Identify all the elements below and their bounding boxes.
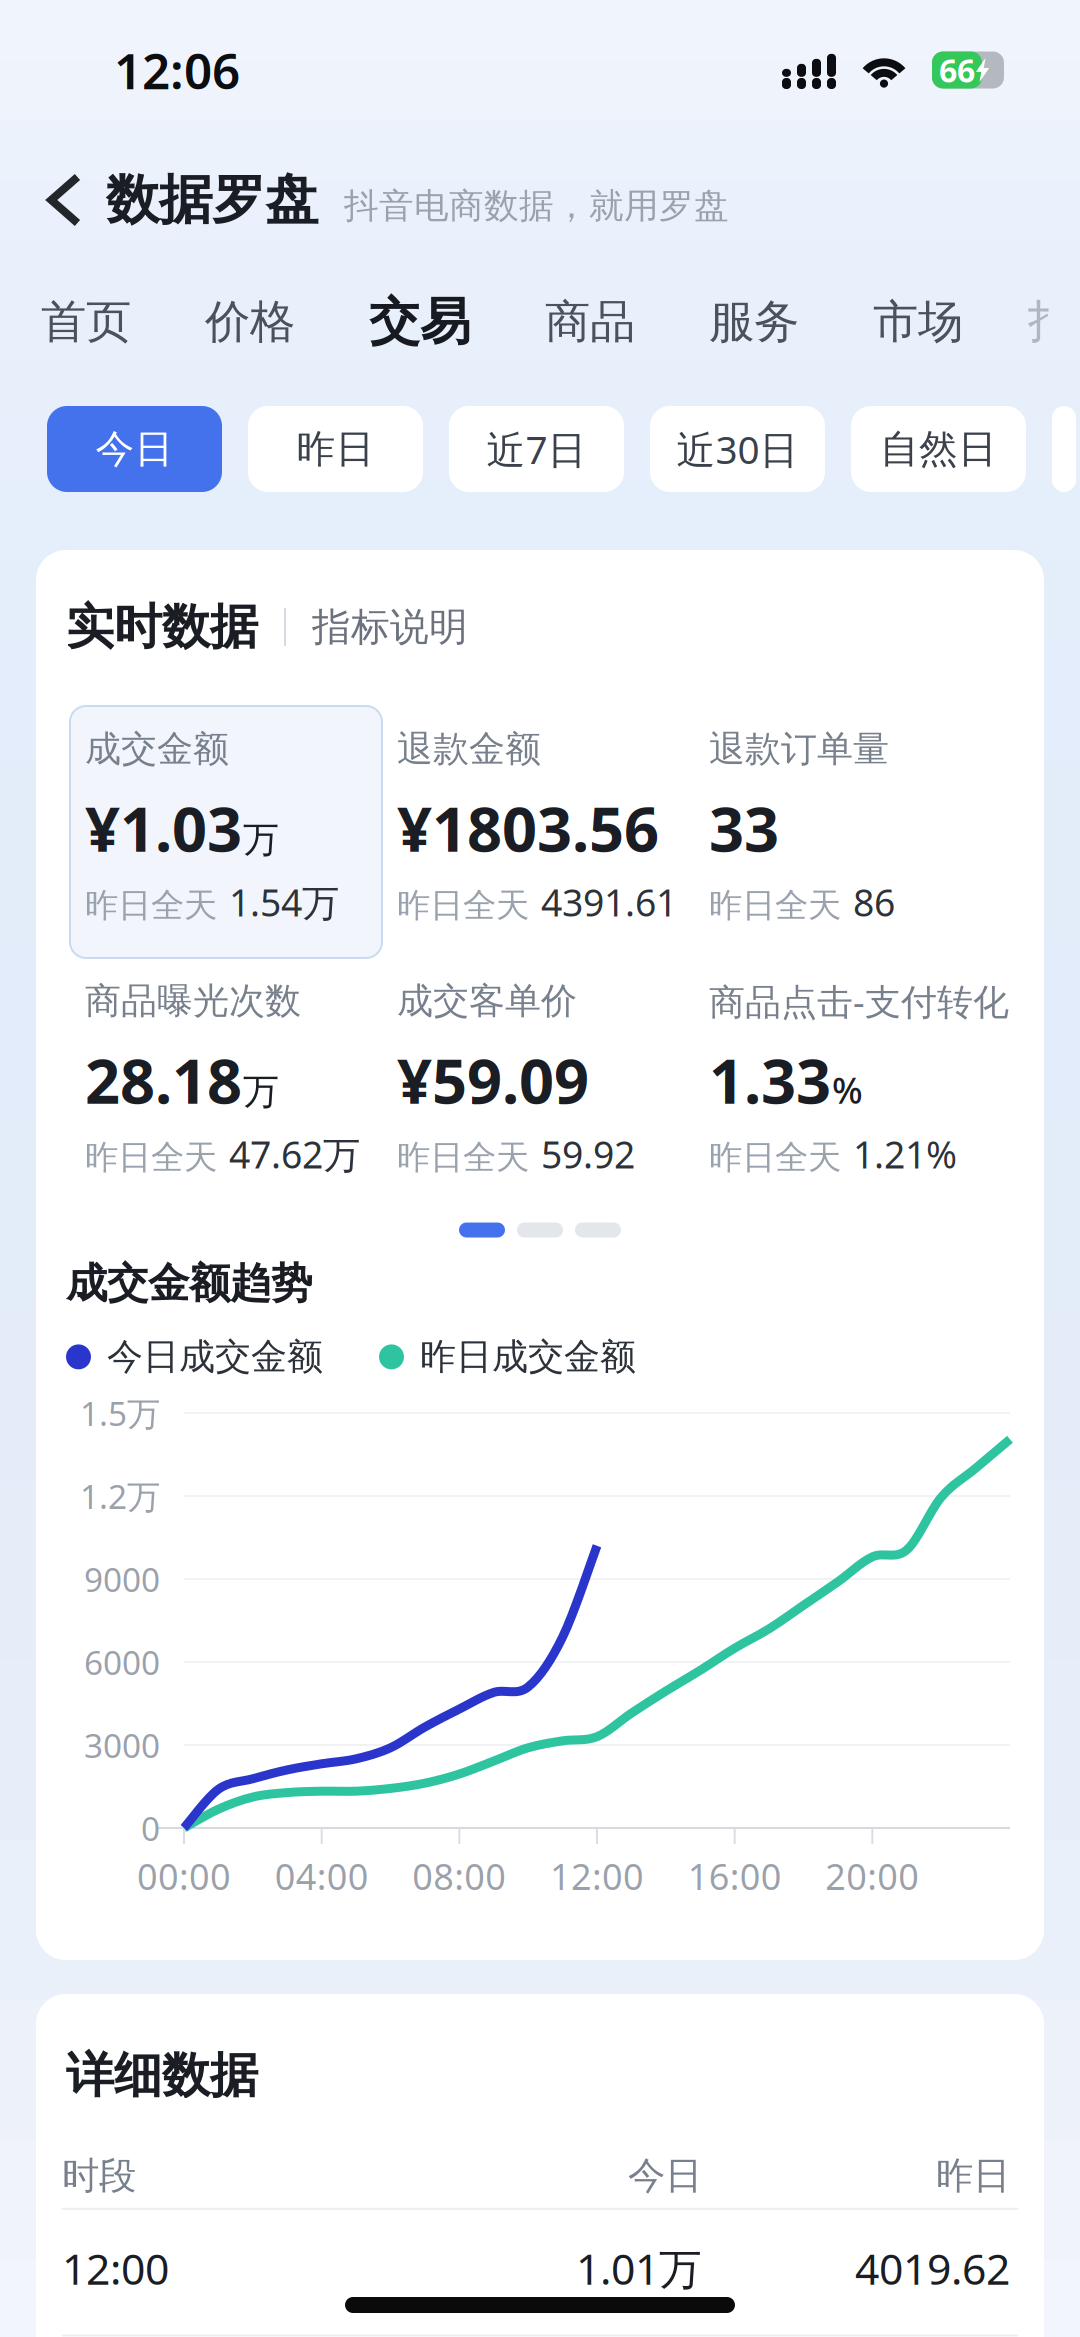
staticText: 04:00 [275,1852,369,1900]
staticText: 商品点击-支付转化 [709,977,1009,1025]
button[interactable]: 昨日 [248,406,423,492]
staticText: 详细数据 [66,2046,258,2105]
staticText: 万 [243,818,279,862]
staticText: 价格 [205,294,295,350]
staticText: 自然日 [880,425,997,473]
staticText: 今日成交金额 [107,1335,323,1379]
staticText: 4019.62 [855,2240,1010,2296]
staticText: 近7日 [486,423,586,475]
button[interactable]: 今日 [47,406,222,492]
staticText: % [832,1066,863,1114]
button[interactable]: 市场 [836,262,1000,382]
staticText: 昨日全天 [85,1137,217,1178]
button[interactable]: 交易 [332,262,508,382]
staticText: 市场 [873,294,963,350]
staticText: 昨日全天 [397,885,529,926]
staticText: 昨日成交金额 [420,1335,636,1379]
staticText: 20:00 [825,1852,919,1900]
button[interactable]: Back [46,172,106,228]
staticText: 86 [853,877,895,927]
staticText: 3000 [84,1723,160,1767]
staticText: 交易 [369,291,471,353]
staticText: 08:00 [412,1852,506,1900]
staticText: 12:00 [62,2240,169,2296]
staticText: 昨日 [296,425,374,473]
staticText: 今日 [628,2153,702,2199]
staticText: 9000 [84,1557,160,1601]
staticText: 昨日全天 [397,1137,529,1178]
staticText: 商品曝光次数 [85,979,301,1023]
staticText: 6000 [84,1640,160,1684]
staticText: 59.92 [541,1129,635,1179]
staticText: 1.54万 [229,877,339,927]
staticText: 28.18 [85,1039,242,1121]
staticText: 商品 [545,294,635,350]
button[interactable]: 自然日 [851,406,1026,492]
staticText: 成交客单价 [397,979,577,1023]
staticText: 昨日全天 [85,885,217,926]
staticText: 扌 [1026,294,1071,350]
button[interactable]: 商品 [508,262,672,382]
staticText: 时段 [62,2153,136,2199]
staticText: 4391.61 [541,877,677,927]
staticText: 抖音电商数据，就用罗盘 [344,185,729,227]
staticText: 退款金额 [397,727,541,771]
staticText: 退款订单量 [709,727,889,771]
staticText: ¥1.03 [85,787,242,869]
staticText: 1.5万 [80,1391,160,1435]
staticText: 实时数据 [66,597,258,656]
button[interactable]: 近30日 [650,406,825,492]
staticText: 12:06 [114,37,240,103]
staticText: 0 [141,1806,160,1850]
staticText: 12:00 [550,1852,644,1900]
staticText: 昨日 [936,2153,1010,2199]
staticText: 昨日全天 [709,1137,841,1178]
staticText: 1.2万 [80,1474,160,1518]
staticText: 47.62万 [229,1129,360,1179]
staticText: 33 [709,787,779,869]
staticText: 万 [243,1070,279,1114]
button[interactable]: 近7日 [449,406,624,492]
button[interactable]: 价格 [168,262,332,382]
button[interactable]: 指标说明 [312,603,468,651]
staticText: 指标说明 [312,603,468,651]
staticText: 首页 [41,294,131,350]
staticText: 今日 [95,425,173,473]
staticText: 1.33 [709,1039,831,1121]
staticText: ¥1803.56 [397,787,659,869]
staticText: ¥59.09 [397,1039,589,1121]
staticText: 66 [939,49,975,91]
staticText: 1.01万 [576,2240,702,2296]
staticText: 近30日 [676,423,798,475]
staticText: 数据罗盘 [106,167,318,233]
staticText: 16:00 [688,1852,782,1900]
staticText: 成交金额趋势 [66,1258,312,1309]
staticText: 00:00 [137,1852,231,1900]
staticText: 服务 [709,294,799,350]
button[interactable]: 首页 [4,262,168,382]
staticText: 1.21% [853,1129,957,1179]
staticText: 昨日全天 [709,885,841,926]
staticText: 成交金额 [85,727,229,771]
button[interactable]: 服务 [672,262,836,382]
